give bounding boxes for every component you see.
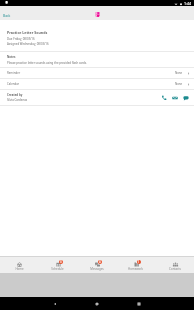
- button[interactable]: Back: [50, 299, 60, 309]
- button[interactable]: Back: [0, 8, 15, 18]
- button[interactable]: Calendar: [0, 79, 194, 89]
- button[interactable]: Contacts: [155, 259, 194, 271]
- staticText: Created by: [7, 93, 23, 97]
- staticText: Assigned Wednesday, 08/03/16: [7, 42, 49, 46]
- button[interactable]: Home: [0, 259, 38, 271]
- button[interactable]: Message: [180, 92, 191, 103]
- staticText: Please practice letter sounds using the …: [7, 61, 87, 65]
- staticText: Homework: [128, 267, 143, 271]
- button[interactable]: Reminder: [0, 68, 194, 78]
- staticText: 1: [138, 260, 140, 264]
- button[interactable]: 3: [38, 259, 77, 271]
- staticText: Schedule: [51, 267, 64, 271]
- button[interactable]: 1: [116, 259, 155, 271]
- staticText: None: [175, 82, 183, 86]
- staticText: Practice Letter Sounds: [7, 30, 48, 35]
- staticText: Home: [15, 267, 24, 271]
- staticText: 4: [99, 260, 101, 264]
- staticText: Messages: [90, 267, 104, 271]
- staticText: Silvia Cardenas: [7, 98, 28, 102]
- staticText: Back: [3, 13, 11, 17]
- staticText: Due Friday, 08/05/16: [7, 37, 35, 41]
- staticText: 1:44: [184, 1, 192, 6]
- staticText: Calendar: [7, 82, 20, 86]
- button[interactable]: 4: [77, 259, 116, 271]
- button[interactable]: Call: [158, 92, 169, 103]
- button[interactable]: Recents: [134, 299, 144, 309]
- staticText: 3: [60, 260, 62, 264]
- staticText: Contacts: [169, 267, 181, 271]
- staticText: None: [175, 71, 183, 75]
- staticText: Reminder: [7, 71, 21, 75]
- button[interactable]: Home: [92, 299, 102, 309]
- button[interactable]: Email: [169, 92, 180, 103]
- staticText: Notes: [7, 55, 16, 59]
